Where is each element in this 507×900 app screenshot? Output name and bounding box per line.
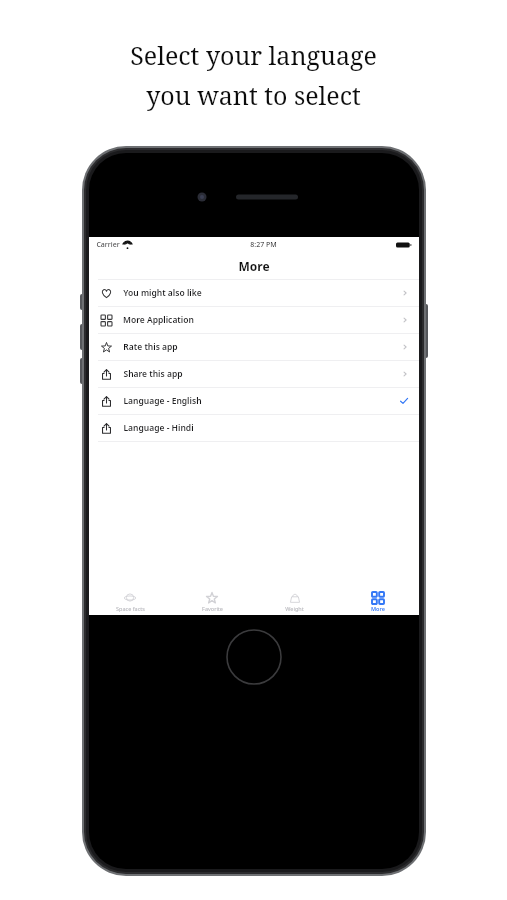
button[interactable]: More Application (89, 307, 419, 333)
button[interactable]: Language - Hindi (89, 415, 419, 441)
staticText: Rate this app (123, 341, 178, 353)
staticText: Language - English (123, 395, 202, 407)
staticText: More (238, 258, 270, 274)
button[interactable]: Rate this app (89, 334, 419, 360)
button[interactable]: Weight (253, 592, 336, 612)
staticText: 8:27 PM (250, 240, 277, 250)
staticText: Space facts (116, 605, 145, 612)
staticText: Share this app (123, 368, 183, 380)
button[interactable]: Favorite (171, 592, 253, 612)
staticText: More (371, 605, 385, 612)
staticText: More Application (123, 314, 194, 326)
staticText: Carrier (96, 240, 120, 250)
button[interactable]: More (336, 592, 419, 612)
staticText: Favorite (202, 605, 223, 612)
button[interactable]: Language - English (89, 388, 419, 414)
button[interactable]: Space facts (89, 592, 171, 612)
button[interactable]: Share this app (89, 361, 419, 387)
staticText: Language - Hindi (123, 422, 194, 434)
staticText: you want to select (146, 78, 361, 112)
staticText: Weight (285, 605, 304, 612)
button[interactable]: You might also like (89, 280, 419, 306)
staticText: You might also like (123, 287, 202, 299)
staticText: Select your language (130, 38, 377, 72)
